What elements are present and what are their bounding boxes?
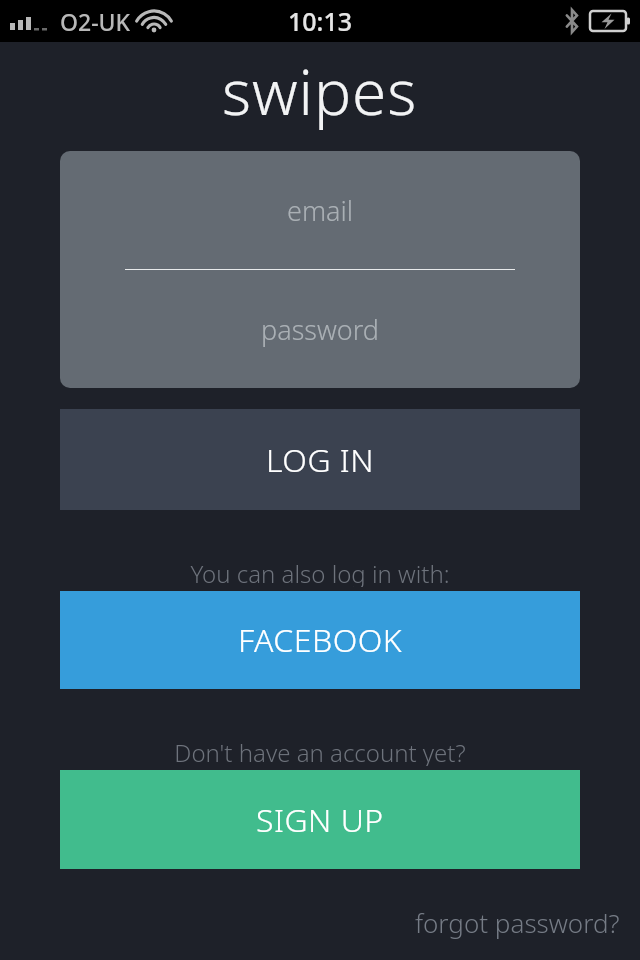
staticText: FACEBOOK [238, 618, 403, 662]
staticText: forgot password? [415, 905, 620, 940]
staticText: Don't have an account yet? [174, 736, 466, 766]
button[interactable]: password [60, 270, 580, 388]
staticText: email [287, 192, 354, 229]
button[interactable]: SIGN UP [60, 770, 580, 869]
staticText: You can also log in with: [190, 557, 450, 587]
button[interactable]: FACEBOOK [60, 591, 580, 689]
button[interactable]: LOG IN [60, 409, 580, 510]
button[interactable]: email [60, 151, 580, 269]
staticText: 10:13 [288, 4, 353, 38]
staticText: swipes [222, 49, 418, 133]
staticText: O2-UK [60, 6, 131, 37]
staticText: LOG IN [266, 438, 375, 482]
button[interactable]: forgot password? [409, 899, 626, 946]
staticText: password [261, 311, 379, 348]
staticText: SIGN UP [256, 798, 384, 842]
